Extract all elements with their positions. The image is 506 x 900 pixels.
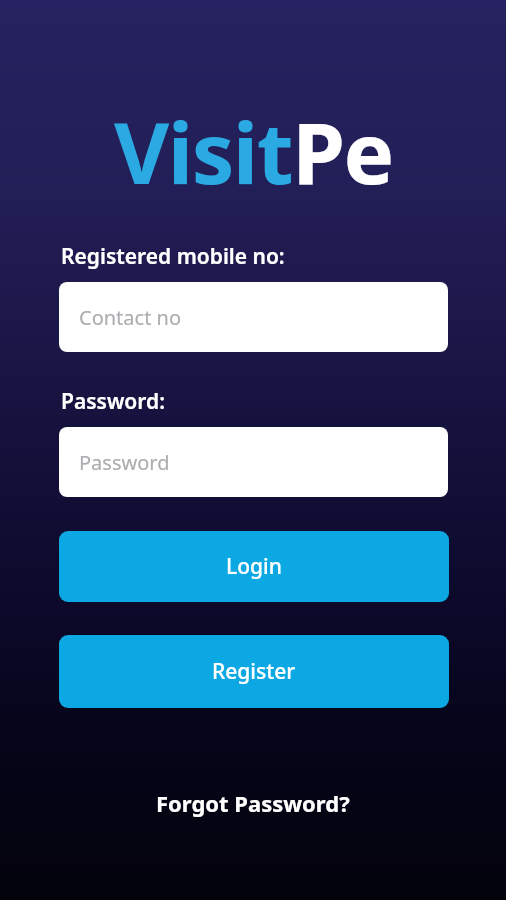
- staticText: Password: [79, 449, 170, 476]
- staticText: Login: [226, 552, 282, 581]
- staticText: Register: [212, 657, 296, 686]
- staticText: Registered mobile no:: [61, 242, 285, 271]
- button[interactable]: Register: [59, 635, 449, 708]
- button[interactable]: Password: [59, 427, 448, 497]
- staticText: Forgot Password?: [156, 788, 350, 818]
- button[interactable]: Forgot Password?: [148, 780, 358, 826]
- button[interactable]: Contact no: [59, 282, 448, 352]
- staticText: VisitPe: [114, 93, 393, 209]
- staticText: Contact no: [79, 304, 182, 331]
- button[interactable]: Login: [59, 531, 449, 602]
- staticText: Password:: [61, 387, 165, 416]
